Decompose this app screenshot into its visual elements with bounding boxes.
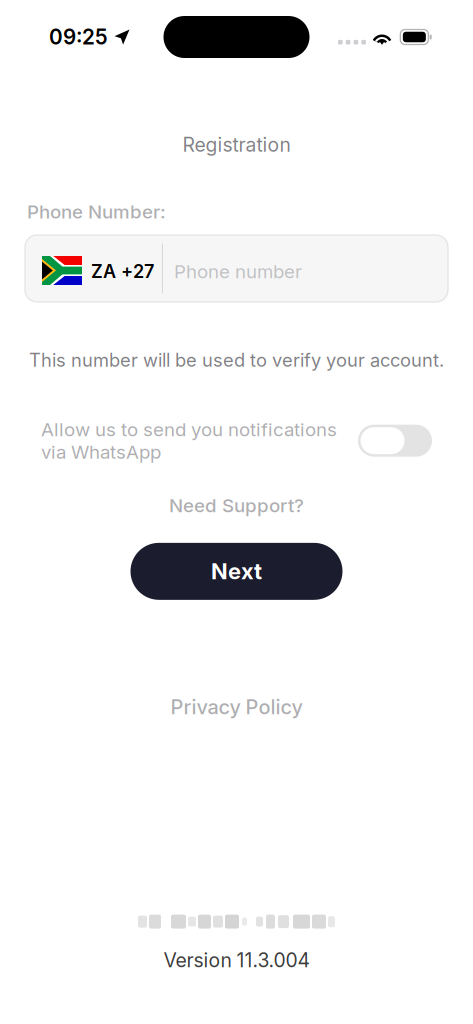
staticText: Version 11.3.004 <box>163 949 309 972</box>
staticText: Registration <box>182 133 290 156</box>
staticText: Privacy Policy <box>170 695 302 719</box>
staticText: Allow us to send you notifications <box>41 418 337 441</box>
button[interactable]: ZA +27 <box>25 235 448 302</box>
staticText: 09:25 <box>49 24 108 49</box>
staticText: This number will be used to verify your … <box>29 349 444 371</box>
staticText: via WhatsApp <box>41 441 161 463</box>
button[interactable]: Privacy Policy <box>170 695 302 719</box>
staticText: Phone number <box>174 260 302 283</box>
staticText: ZA +27 <box>91 261 154 282</box>
button[interactable]: Need Support? <box>169 494 304 517</box>
button[interactable]: Allow notifications via WhatsApp <box>358 425 432 457</box>
staticText: Phone Number: <box>27 200 166 223</box>
button[interactable]: Next <box>130 543 342 600</box>
staticText: Need Support? <box>169 494 304 517</box>
staticText: Next <box>211 558 262 585</box>
